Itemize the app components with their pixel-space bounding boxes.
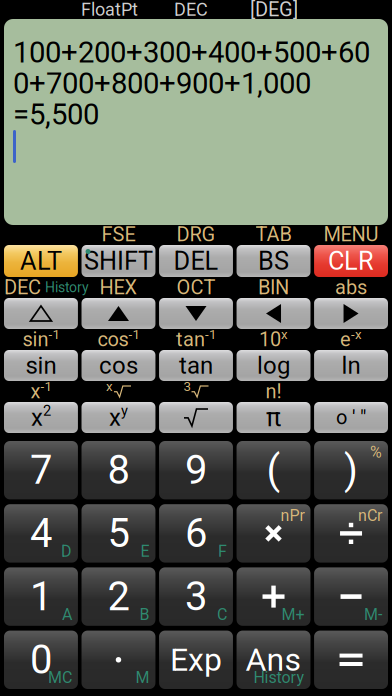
button[interactable]: 2 <box>81 567 155 626</box>
staticText: M <box>135 668 149 687</box>
button[interactable]: SHIFT <box>81 245 155 277</box>
staticText: 0 <box>30 636 52 683</box>
staticText: x <box>109 403 121 431</box>
button[interactable]: ln <box>314 350 388 381</box>
button[interactable]: DEL <box>159 245 233 277</box>
button[interactable]: 3 <box>159 567 233 626</box>
button[interactable]: o ′ ″ <box>314 402 388 433</box>
staticText: sin <box>25 351 56 379</box>
staticText: [DEG] <box>250 0 298 21</box>
staticText: History <box>45 279 89 296</box>
staticText: D <box>61 542 72 561</box>
staticText: x <box>30 380 40 403</box>
button[interactable] <box>237 567 310 626</box>
staticText: -1 <box>40 379 51 394</box>
button[interactable]: Ans <box>237 631 310 689</box>
staticText: F <box>218 542 227 561</box>
staticText: 3 <box>185 573 207 620</box>
staticText: abs <box>335 276 367 299</box>
button[interactable]: BS <box>237 245 310 277</box>
staticText: DEC <box>4 276 41 299</box>
staticText: BS <box>258 246 289 276</box>
staticText: ln <box>341 351 360 379</box>
staticText: FSE <box>101 223 135 246</box>
staticText: 2 <box>107 573 129 620</box>
button[interactable]: Exp <box>159 631 233 689</box>
staticText: OCT <box>176 276 215 299</box>
button[interactable]: x <box>81 402 155 433</box>
button[interactable]: 8 <box>81 441 155 499</box>
staticText: nCr <box>358 506 382 525</box>
button[interactable] <box>314 631 388 689</box>
staticText: ) <box>344 447 358 494</box>
button[interactable]: sin <box>4 350 78 381</box>
button[interactable]: 5 <box>81 504 155 563</box>
staticText: 2 <box>43 402 51 419</box>
staticText: A <box>62 605 72 624</box>
staticText: BIN <box>258 276 289 299</box>
staticText: x <box>31 403 43 431</box>
button[interactable]: nCr <box>314 504 388 563</box>
staticText: 0+700+800+900+1,000 <box>13 66 311 101</box>
staticText: Ans <box>245 641 301 678</box>
staticText: -1 <box>205 327 216 342</box>
staticText: 7 <box>30 447 52 494</box>
staticText: FloatPt <box>81 0 138 20</box>
staticText: DEC <box>174 0 208 20</box>
staticText: -1 <box>48 327 59 342</box>
staticText: 5 <box>107 510 129 557</box>
staticText: SHIFT <box>84 246 153 276</box>
button[interactable]: 0 <box>4 631 78 689</box>
button[interactable]: right <box>314 298 388 329</box>
staticText: B <box>139 605 149 624</box>
button[interactable]: ( <box>237 441 310 499</box>
staticText: C <box>217 605 227 624</box>
button[interactable]: down <box>159 298 233 329</box>
staticText: ( <box>266 447 280 494</box>
button[interactable]: π <box>237 402 310 433</box>
button[interactable]: nPr <box>237 504 310 563</box>
button[interactable]: ALT <box>4 245 78 277</box>
button[interactable]: 7 <box>4 441 78 499</box>
staticText: o ′ ″ <box>336 406 366 429</box>
staticText: E <box>140 542 149 561</box>
staticText: MC <box>48 668 72 687</box>
button[interactable]: x <box>4 402 78 433</box>
button[interactable]: tan <box>159 350 233 381</box>
staticText: 8 <box>107 447 129 494</box>
staticText: M+ <box>281 605 304 624</box>
staticText <box>38 223 43 246</box>
staticText: x <box>281 327 288 342</box>
staticText: MENU <box>323 223 378 246</box>
button[interactable]: 9 <box>159 441 233 499</box>
staticText: sin <box>22 328 48 351</box>
staticText: n! <box>265 380 281 403</box>
staticText: nPr <box>280 506 304 525</box>
button[interactable]: cos <box>81 350 155 381</box>
staticText: -x <box>351 327 362 342</box>
button[interactable]: CLR <box>314 245 388 277</box>
staticText: CLR <box>328 246 374 276</box>
button[interactable] <box>81 631 155 689</box>
staticText: Exp <box>170 641 222 678</box>
button[interactable]: log <box>237 350 310 381</box>
staticText: =5,500 <box>13 97 99 132</box>
button[interactable]: 6 <box>159 504 233 563</box>
staticText: cos <box>99 351 138 379</box>
button[interactable] <box>314 567 388 626</box>
button[interactable]: 1 <box>4 567 78 626</box>
staticText: 6 <box>185 510 207 557</box>
staticText: 10 <box>259 328 281 351</box>
staticText: tan <box>176 328 205 351</box>
staticText: M- <box>364 605 382 624</box>
button[interactable]: 4 <box>4 504 78 563</box>
staticText: DRG <box>176 223 215 246</box>
button[interactable]: ) <box>314 441 388 499</box>
button[interactable]: left <box>237 298 310 329</box>
staticText: 4 <box>30 510 52 557</box>
staticText: cos <box>97 328 128 351</box>
button[interactable]: up outline <box>4 298 78 329</box>
button[interactable]: up <box>81 298 155 329</box>
button[interactable]: square root <box>159 402 233 433</box>
staticText: ALT <box>20 246 62 276</box>
